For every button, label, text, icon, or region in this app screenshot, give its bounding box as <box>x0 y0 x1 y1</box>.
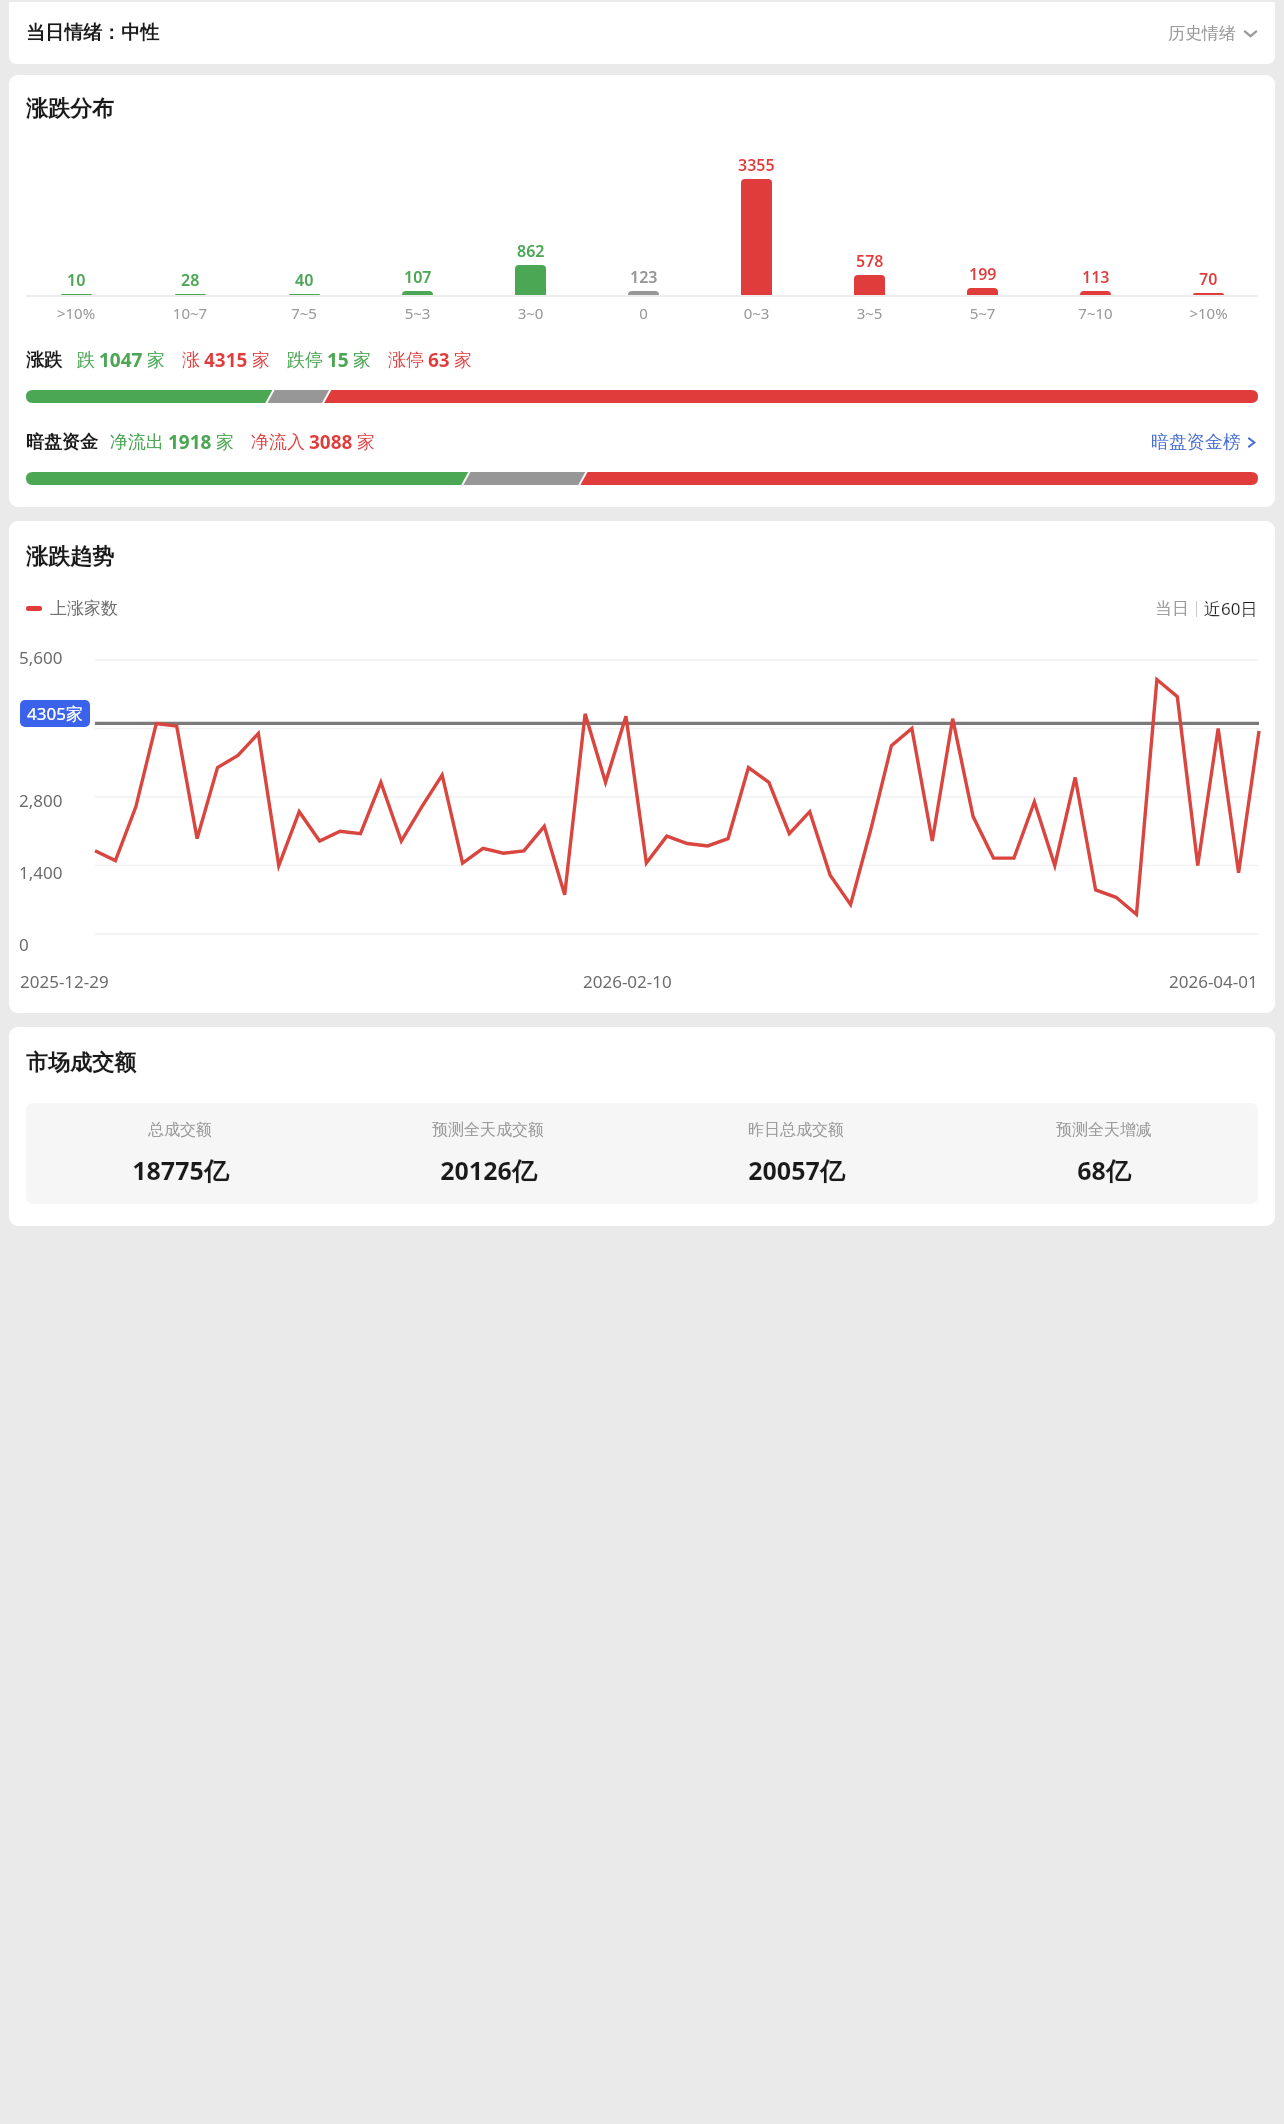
staticText: 20057亿 <box>748 1153 845 1187</box>
button[interactable]: 当日 <box>1155 598 1189 619</box>
staticText: 63 <box>428 347 450 373</box>
staticText: 70 <box>1199 268 1218 290</box>
staticText: 家 <box>357 431 375 454</box>
staticText: 涨跌 <box>26 349 62 372</box>
staticText: 3~0 <box>474 303 587 323</box>
staticText: 当日情绪：中性 <box>26 21 159 45</box>
staticText: 暗盘资金 <box>26 431 98 454</box>
staticText: 1918 <box>168 429 212 455</box>
staticText: 5,600 <box>19 646 63 669</box>
staticText: 预测全天成交额 <box>432 1120 544 1140</box>
staticText: 2026-04-01 <box>1169 970 1258 993</box>
staticText: 578 <box>856 250 884 272</box>
staticText: 0 <box>19 933 29 956</box>
staticText: 上涨家数 <box>50 598 118 619</box>
other: 展开历史情绪 <box>1243 26 1258 41</box>
staticText: 家 <box>216 431 234 454</box>
staticText: 123 <box>630 266 658 288</box>
staticText: 5~3 <box>361 303 474 323</box>
staticText: 家 <box>353 349 371 372</box>
staticText: 昨日总成交额 <box>748 1120 844 1140</box>
staticText: 1047 <box>99 347 143 373</box>
button[interactable]: 近60日 <box>1204 597 1258 620</box>
staticText: 涨 <box>182 349 200 372</box>
staticText: 5~7 <box>926 303 1039 323</box>
staticText: 0~3 <box>700 303 813 323</box>
staticText: >10% <box>19 303 133 323</box>
staticText: 862 <box>517 240 545 262</box>
button[interactable]: 暗盘资金榜 <box>1151 431 1258 454</box>
staticText: 0 <box>587 303 700 323</box>
staticText: 总成交额 <box>148 1120 212 1140</box>
staticText: 199 <box>969 263 997 285</box>
staticText: 4305家 <box>27 702 83 725</box>
staticText: 7~5 <box>247 303 361 323</box>
staticText: 40 <box>295 269 314 291</box>
staticText: 净流入 <box>251 431 305 454</box>
staticText: 10 <box>67 269 86 291</box>
staticText: 预测全天增减 <box>1056 1120 1152 1140</box>
staticText: 2,800 <box>19 789 63 812</box>
staticText: 10~7 <box>133 303 247 323</box>
staticText: 113 <box>1082 266 1110 288</box>
button[interactable]: 历史情绪 <box>1168 23 1258 44</box>
staticText: 跌 <box>77 349 95 372</box>
staticText: 68亿 <box>1077 1153 1131 1187</box>
staticText: 107 <box>404 266 432 288</box>
staticText: 28 <box>181 269 200 291</box>
staticText: 家 <box>454 349 472 372</box>
staticText: 18775亿 <box>132 1153 229 1187</box>
staticText: 净流出 <box>110 431 164 454</box>
staticText: 20126亿 <box>440 1153 537 1187</box>
staticText: 7~10 <box>1039 303 1152 323</box>
staticText: 4315 <box>204 347 248 373</box>
staticText: 跌停 <box>287 349 323 372</box>
staticText: 3355 <box>738 154 775 176</box>
staticText: 涨跌趋势 <box>26 543 114 571</box>
staticText: 3~5 <box>813 303 926 323</box>
staticText: 2026-02-10 <box>583 970 672 993</box>
staticText: 暗盘资金榜 <box>1151 431 1241 454</box>
staticText: >10% <box>1152 303 1265 323</box>
staticText: 2025-12-29 <box>20 970 109 993</box>
staticText: 涨停 <box>388 349 424 372</box>
staticText: 家 <box>147 349 165 372</box>
staticText: 1,400 <box>19 861 63 884</box>
staticText: 涨跌分布 <box>26 95 114 123</box>
staticText: 市场成交额 <box>26 1049 136 1077</box>
staticText: 家 <box>252 349 270 372</box>
staticText: 历史情绪 <box>1168 23 1236 44</box>
staticText: 15 <box>327 347 349 373</box>
staticText: 3088 <box>309 429 353 455</box>
